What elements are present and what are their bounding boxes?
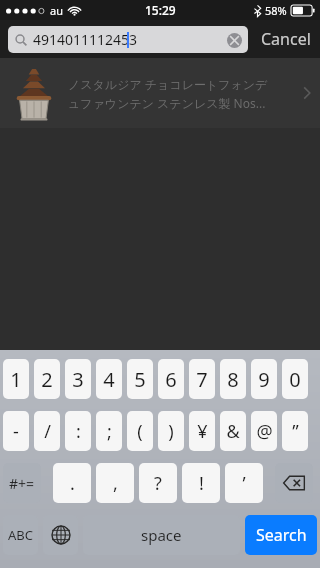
button[interactable]: 0 (282, 359, 308, 399)
staticText: 4914011112453 (33, 30, 138, 49)
button[interactable]: 7 (189, 359, 215, 399)
button[interactable]: @ (251, 411, 277, 451)
button[interactable]: Cancel (252, 20, 320, 58)
button[interactable]: 4 (96, 359, 122, 399)
staticText: / (44, 419, 51, 444)
staticText: ( (137, 419, 143, 444)
button[interactable]: & (220, 411, 246, 451)
button[interactable]: 2 (34, 359, 60, 399)
button[interactable]: Search (245, 515, 317, 555)
staticText: Cancel (261, 28, 311, 50)
button[interactable]: Change keyboard language (43, 515, 78, 555)
staticText: 8 (227, 366, 239, 393)
staticText: 58% (265, 3, 287, 18)
staticText: 6 (165, 366, 177, 393)
staticText: ABC (8, 526, 33, 544)
staticText: 0 (289, 366, 301, 393)
staticText: 5 (134, 366, 146, 393)
staticText: 3 (72, 366, 84, 393)
button[interactable]: ¥ (189, 411, 215, 451)
staticText: ” (292, 419, 299, 444)
button[interactable]: space (83, 515, 240, 555)
button[interactable]: 6 (158, 359, 184, 399)
staticText: ? (154, 471, 162, 496)
button[interactable]: ABC (3, 515, 38, 555)
staticText: 1 (10, 366, 22, 393)
staticText: ¥ (197, 419, 208, 444)
button[interactable]: : (65, 411, 91, 451)
button[interactable]: ) (158, 411, 184, 451)
button[interactable]: ノスタルジア チョコレートフォンデ (0, 58, 320, 128)
staticText: & (226, 419, 240, 444)
button[interactable]: 5 (127, 359, 153, 399)
staticText: au (50, 3, 63, 18)
staticText: - (13, 419, 19, 444)
button[interactable]: Clear text (226, 32, 242, 48)
staticText: 9 (258, 366, 270, 393)
button[interactable]: ( (127, 411, 153, 451)
staticText: 15:29 (145, 2, 176, 18)
staticText: #+= (9, 474, 35, 493)
button[interactable]: - (3, 411, 29, 451)
staticText: 2 (41, 366, 53, 393)
staticText: : (76, 419, 81, 444)
staticText: ノスタルジア チョコレートフォンデ (68, 76, 268, 92)
staticText: ’ (242, 471, 246, 496)
button[interactable]: #+= (3, 463, 41, 503)
staticText: , (113, 471, 118, 496)
button[interactable]: / (34, 411, 60, 451)
button[interactable]: 8 (220, 359, 246, 399)
button[interactable]: 1 (3, 359, 29, 399)
button[interactable]: 3 (65, 359, 91, 399)
button[interactable]: ” (282, 411, 308, 451)
button[interactable]: . (53, 463, 91, 503)
staticText: 4 (103, 366, 115, 393)
staticText: ュファウンテン ステンレス製 Nos... (68, 95, 266, 111)
button[interactable]: , (96, 463, 134, 503)
staticText: space (141, 525, 182, 545)
button[interactable]: 9 (251, 359, 277, 399)
staticText: ! (199, 471, 204, 496)
button[interactable]: ; (96, 411, 122, 451)
staticText: ) (168, 419, 174, 444)
staticText: . (70, 471, 75, 496)
button[interactable]: ? (139, 463, 177, 503)
button[interactable]: Delete (275, 463, 313, 503)
staticText: @ (256, 419, 273, 444)
button[interactable]: ! (182, 463, 220, 503)
staticText: 7 (196, 366, 208, 393)
staticText: ; (107, 419, 112, 444)
staticText: Search (256, 524, 307, 546)
button[interactable]: ’ (225, 463, 263, 503)
button[interactable]: 4914011112453 (8, 26, 248, 53)
